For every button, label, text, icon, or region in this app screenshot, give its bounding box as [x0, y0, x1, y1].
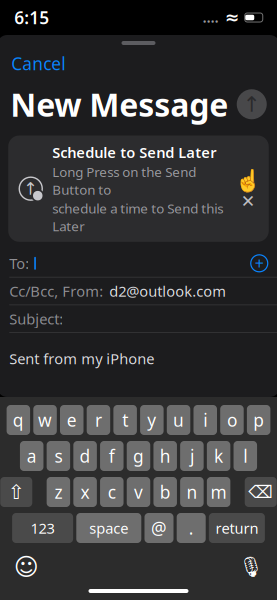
button[interactable]: r: [87, 405, 110, 435]
staticText: d2@outlook.com: [109, 281, 226, 301]
button[interactable]: d: [73, 441, 97, 471]
button[interactable]: s: [47, 441, 70, 471]
staticText: .: [189, 516, 194, 539]
staticText: ⇧: [8, 481, 25, 503]
button[interactable]: Add contact: [251, 253, 268, 274]
button[interactable]: Dismiss tip: [238, 194, 258, 209]
button[interactable]: a: [20, 441, 43, 471]
staticText: +: [255, 253, 264, 274]
staticText: To:: [9, 254, 29, 273]
staticText: 🎙: [238, 556, 263, 578]
staticText: space: [89, 518, 128, 538]
staticText: q: [13, 408, 24, 431]
button[interactable]: i: [193, 405, 217, 435]
button[interactable]: .: [177, 513, 206, 543]
staticText: u: [173, 408, 184, 431]
button[interactable]: return: [209, 513, 265, 543]
staticText: e: [67, 408, 77, 431]
button[interactable]: Emoji: [13, 555, 39, 579]
button[interactable]: w: [33, 405, 57, 435]
staticText: r: [95, 408, 102, 431]
staticText: @: [151, 516, 167, 539]
staticText: y: [147, 408, 156, 431]
button[interactable]: j: [180, 441, 204, 471]
staticText: k: [214, 444, 223, 467]
button[interactable]: m: [207, 477, 230, 507]
button[interactable]: o: [220, 405, 244, 435]
staticText: s: [54, 444, 62, 467]
button[interactable]: u: [167, 405, 190, 435]
staticText: a: [27, 444, 37, 467]
button[interactable]: g: [127, 441, 150, 471]
staticText: Sent from my iPhone: [9, 349, 154, 368]
button[interactable]: k: [207, 441, 230, 471]
button[interactable]: n: [180, 477, 204, 507]
button[interactable]: z: [47, 477, 70, 507]
staticText: b: [160, 480, 171, 503]
staticText: ⌫: [248, 482, 273, 502]
staticText: ☝: [235, 168, 262, 193]
staticText: g: [133, 444, 144, 467]
staticText: z: [54, 480, 62, 503]
staticText: Schedule to Send Later: [52, 142, 216, 162]
staticText: l: [243, 444, 247, 467]
staticText: 123: [31, 518, 55, 538]
button[interactable]: space: [76, 513, 141, 543]
button[interactable]: x: [73, 477, 97, 507]
staticText: return: [215, 518, 258, 538]
staticText: ≈: [225, 8, 240, 27]
staticText: t: [122, 408, 128, 431]
staticText: d: [80, 444, 91, 467]
staticText: Subject:: [9, 309, 63, 328]
button[interactable]: p: [247, 405, 270, 435]
button[interactable]: c: [100, 477, 124, 507]
button[interactable]: t: [113, 405, 137, 435]
button[interactable]: Cancel: [9, 49, 67, 78]
staticText: v: [134, 480, 143, 503]
button[interactable]: l: [233, 441, 257, 471]
staticText: x: [81, 480, 90, 503]
staticText: ....: [203, 9, 219, 26]
staticText: ↑: [23, 179, 38, 198]
staticText: c: [108, 480, 116, 503]
button[interactable]: 123: [12, 513, 73, 543]
button[interactable]: Shift: [0, 477, 32, 507]
button[interactable]: f: [100, 441, 123, 471]
staticText: h: [160, 444, 171, 467]
staticText: j: [190, 444, 194, 467]
staticText: n: [186, 480, 197, 503]
staticText: p: [253, 408, 264, 431]
staticText: Cc/Bcc, From:: [9, 281, 103, 301]
staticText: Long Press on the Send Button to: [52, 163, 196, 198]
staticText: ↑: [243, 92, 261, 116]
staticText: Cancel: [11, 52, 65, 75]
button[interactable]: h: [153, 441, 177, 471]
staticText: w: [38, 408, 52, 431]
button[interactable]: q: [7, 405, 30, 435]
staticText: f: [109, 444, 115, 467]
button[interactable]: v: [127, 477, 150, 507]
staticText: ✕: [241, 191, 256, 211]
button[interactable]: Send: [237, 89, 267, 119]
staticText: o: [227, 408, 237, 431]
staticText: ☺: [14, 553, 39, 581]
staticText: schedule a time to Send this Later: [52, 199, 223, 235]
button[interactable]: e: [60, 405, 83, 435]
staticText: New Message: [10, 83, 228, 125]
button[interactable]: Delete: [245, 477, 277, 507]
button[interactable]: @: [144, 513, 173, 543]
staticText: i: [203, 408, 207, 431]
staticText: 6:15: [14, 6, 49, 29]
staticText: m: [211, 480, 227, 503]
button[interactable]: b: [153, 477, 177, 507]
button[interactable]: Dictation: [238, 555, 264, 579]
button[interactable]: y: [140, 405, 164, 435]
